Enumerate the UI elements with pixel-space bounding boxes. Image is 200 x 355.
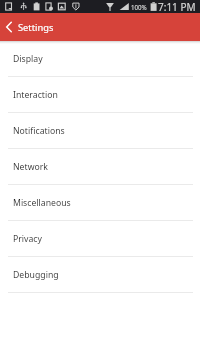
staticText: Privacy [13,233,42,245]
button[interactable]: Display [0,41,200,77]
button[interactable]: Privacy [0,221,200,257]
button[interactable]: Network [0,149,200,185]
staticText: Debugging [13,269,59,281]
staticText: Display [13,53,43,65]
button[interactable]: Navigate up [0,17,15,37]
button[interactable]: Debugging [0,257,200,293]
staticText: Settings [18,21,54,34]
button[interactable]: Notifications [0,113,200,149]
staticText: Miscellaneous [13,197,71,209]
button[interactable]: Miscellaneous [0,185,200,221]
staticText: 7:11 PM [158,0,196,13]
staticText: Notifications [13,125,65,137]
staticText: 100% [131,3,147,11]
staticText: Network [13,161,48,173]
button[interactable]: Interaction [0,77,200,113]
staticText: Interaction [13,89,58,101]
